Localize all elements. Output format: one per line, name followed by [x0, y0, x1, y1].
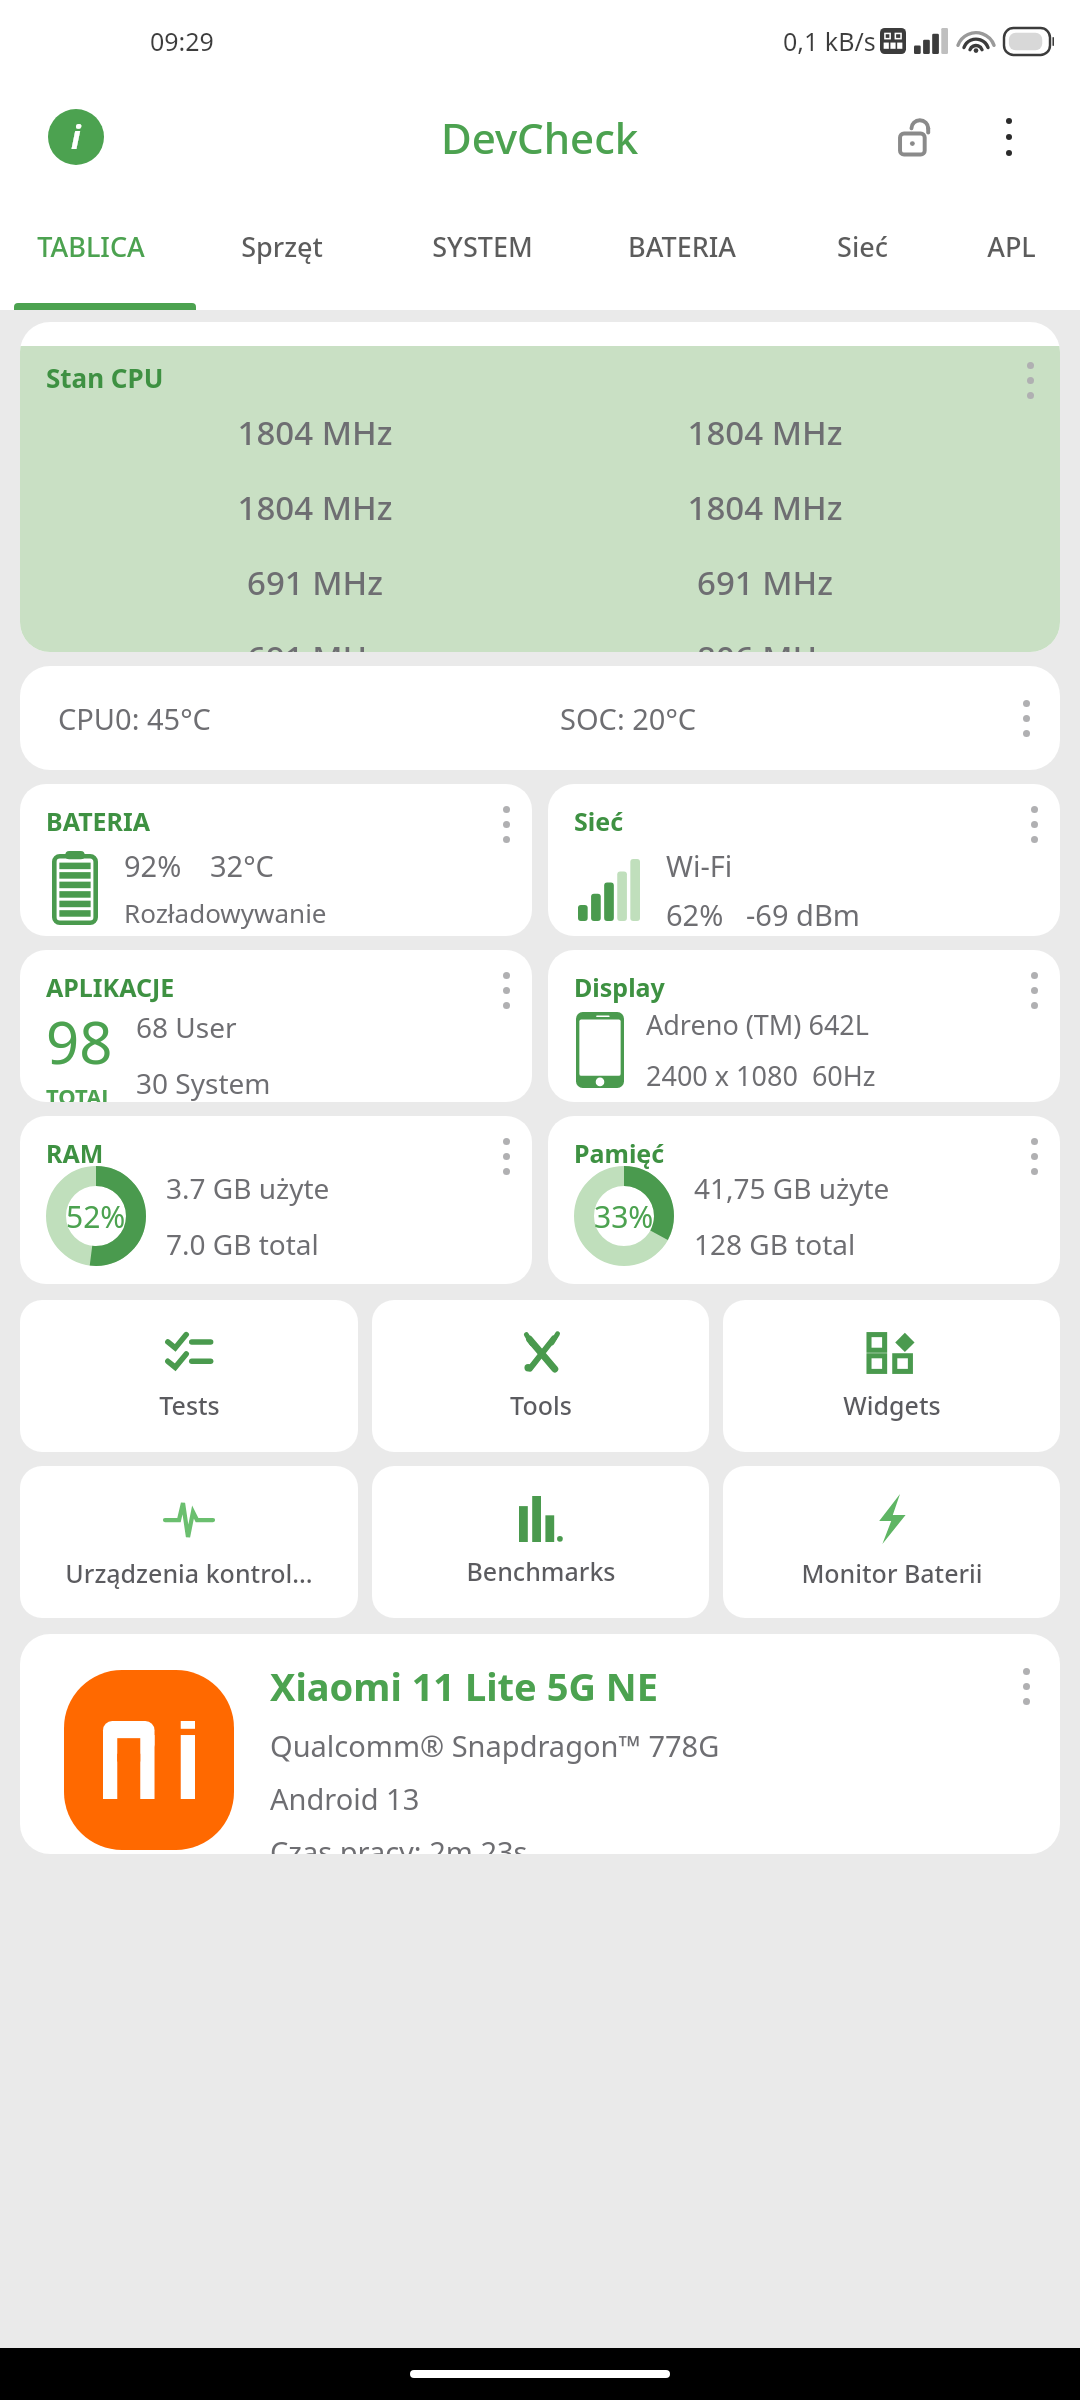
staticText: SYSTEM — [432, 228, 533, 265]
staticText: Tools — [510, 1388, 572, 1422]
button[interactable]: Info — [48, 109, 104, 165]
button[interactable]: Monitor Baterii — [723, 1466, 1060, 1618]
staticText: 32°C — [210, 846, 274, 885]
button[interactable]: BATERIA — [582, 192, 782, 310]
staticText: 30 System — [136, 1064, 271, 1102]
button[interactable]: Stan CPU — [20, 322, 1060, 652]
staticText: Android 13 — [270, 1779, 420, 1818]
staticText: Display — [574, 970, 665, 1004]
staticText: 1804 MHz — [540, 410, 990, 455]
button[interactable]: Sprzęt — [182, 192, 382, 310]
staticText: i — [71, 115, 81, 159]
staticText: Benchmarks — [466, 1554, 616, 1588]
staticText: Sprzęt — [241, 228, 323, 265]
staticText: Urządzenia kontrol... — [65, 1556, 313, 1590]
staticText: Widgets — [843, 1388, 941, 1422]
staticText: DevCheck — [441, 109, 639, 166]
button[interactable]: Display — [548, 950, 1060, 1102]
staticText: 09:29 — [150, 24, 214, 58]
staticText: 3.7 GB użyte — [166, 1169, 330, 1207]
staticText: 92% — [124, 846, 182, 885]
staticText: BATERIA — [46, 804, 151, 838]
button[interactable]: Pamięć — [548, 1116, 1060, 1284]
staticText: SOC: 20°C — [560, 699, 697, 738]
staticText: Qualcomm® Snapdragon™ 778G — [270, 1726, 720, 1765]
button[interactable]: CPU0: 45°C — [20, 666, 1060, 770]
staticText: CPU0: 45°C — [58, 699, 211, 738]
button[interactable]: Sieć — [548, 784, 1060, 936]
staticText: TABLICA — [37, 228, 145, 265]
staticText: 52% — [66, 1196, 126, 1237]
staticText: Tests — [159, 1388, 220, 1422]
staticText: 41,75 GB użyte — [694, 1169, 890, 1207]
staticText: 2400 x 1080 60Hz — [646, 1057, 876, 1094]
staticText: 691 MHz — [540, 560, 990, 605]
staticText: 68 User — [136, 1008, 237, 1046]
staticText: APL — [987, 228, 1036, 265]
button[interactable]: Benchmarks — [372, 1466, 709, 1618]
staticText: Pamięć — [574, 1136, 665, 1170]
staticText: 98 — [46, 1002, 113, 1081]
button[interactable]: RAM — [20, 1116, 532, 1284]
staticText: 62% — [666, 895, 724, 934]
staticText: 1804 MHz — [90, 410, 540, 455]
staticText: Rozładowywanie — [124, 895, 327, 930]
button[interactable]: Widgets — [723, 1300, 1060, 1452]
staticText: 1804 MHz — [90, 485, 540, 530]
staticText: Sieć — [837, 228, 888, 265]
staticText: Sieć — [574, 804, 624, 838]
button[interactable]: APLIKACJE — [20, 950, 532, 1102]
staticText: APLIKACJE — [46, 970, 175, 1004]
staticText: Adreno (TM) 642L — [646, 1006, 869, 1043]
staticText: Xiaomi 11 Lite 5G NE — [270, 1660, 658, 1712]
staticText: TOTAL — [46, 1081, 114, 1102]
staticText: 806 MHz — [540, 635, 990, 652]
button[interactable]: SYSTEM — [382, 192, 582, 310]
button[interactable]: Tools — [372, 1300, 709, 1452]
button[interactable]: Urządzenia kontrol... — [20, 1466, 358, 1618]
staticText: Wi-Fi — [666, 846, 733, 885]
button[interactable]: More options — [974, 102, 1044, 172]
staticText: RAM — [46, 1136, 104, 1170]
staticText: -69 dBm — [746, 895, 860, 934]
button[interactable]: Tests — [20, 1300, 358, 1452]
staticText: Monitor Baterii — [801, 1556, 983, 1590]
button[interactable]: Xiaomi 11 Lite 5G NE — [20, 1634, 1060, 1854]
staticText: 7.0 GB total — [166, 1225, 319, 1263]
button[interactable]: TABLICA — [0, 192, 182, 310]
staticText: 128 GB total — [694, 1225, 856, 1263]
staticText: 0,1 kB/s — [783, 24, 876, 58]
staticText: Stan CPU — [46, 360, 164, 395]
staticText: 691 MHz — [90, 560, 540, 605]
button[interactable]: Unlock — [880, 102, 950, 172]
staticText: 1804 MHz — [540, 485, 990, 530]
staticText: BATERIA — [628, 228, 736, 265]
staticText: 33% — [594, 1196, 654, 1237]
button[interactable]: BATERIA — [20, 784, 532, 936]
button[interactable]: Sieć — [782, 192, 942, 310]
staticText: 691 MHz — [90, 635, 540, 652]
button[interactable]: APL — [942, 192, 1080, 310]
staticText: Czas pracy: 2m 23s — [270, 1832, 528, 1854]
